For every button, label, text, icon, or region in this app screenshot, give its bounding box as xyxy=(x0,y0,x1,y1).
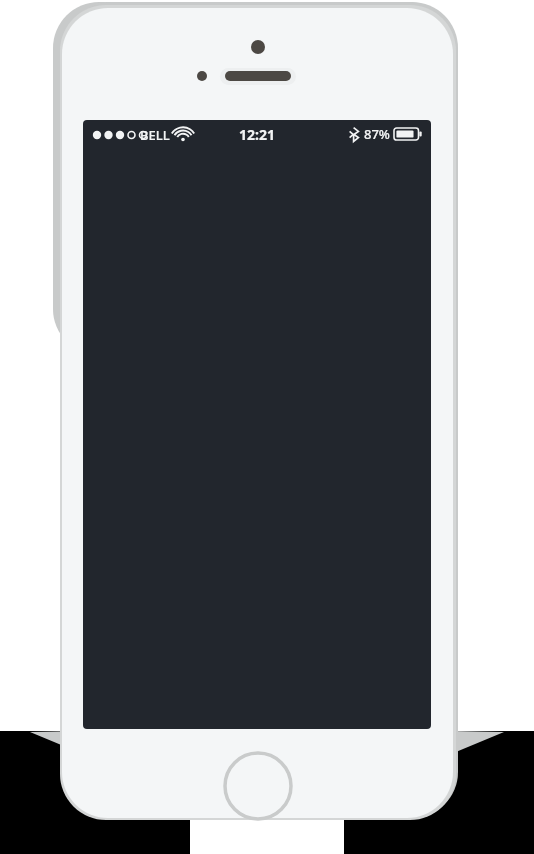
staticText: BELL xyxy=(140,126,170,144)
button[interactable]: Home xyxy=(223,751,293,821)
staticText: 12:21 xyxy=(239,125,275,144)
staticText: 87% xyxy=(364,125,390,143)
